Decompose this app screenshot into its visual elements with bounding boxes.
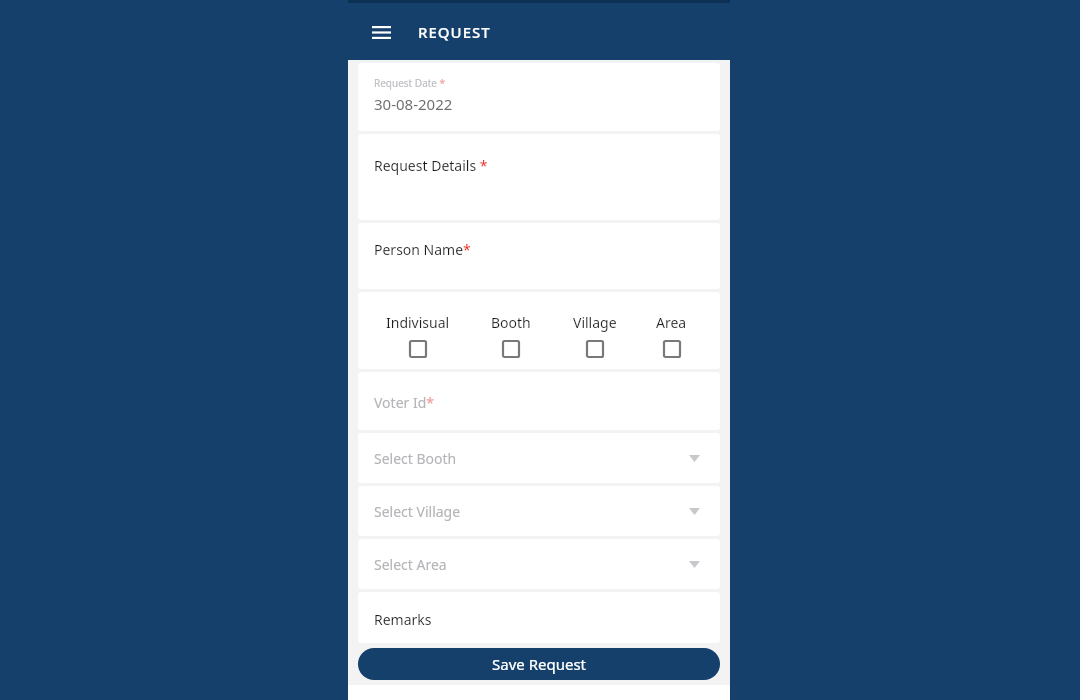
- staticText: Request Details *: [374, 156, 488, 175]
- staticText: Person Name*: [374, 240, 471, 259]
- button[interactable]: Save Request: [358, 648, 720, 680]
- staticText: Select Village: [374, 502, 689, 521]
- staticText: Select Booth: [374, 449, 689, 468]
- button[interactable]: Area: [637, 313, 706, 358]
- staticText: Request Date *: [374, 76, 446, 90]
- other: Expand Select Booth: [689, 455, 700, 462]
- staticText: Indivisual: [386, 313, 450, 332]
- button[interactable]: Open navigation menu: [366, 17, 396, 47]
- staticText: REQUEST: [418, 22, 491, 42]
- staticText: Booth: [491, 313, 531, 332]
- other: Expand Select Village: [689, 508, 700, 515]
- staticText: Save Request: [492, 654, 586, 674]
- button[interactable]: Indivisual: [366, 313, 469, 358]
- staticText: Voter Id*: [374, 393, 435, 412]
- staticText: Village: [573, 313, 617, 332]
- button[interactable]: Select Village: [358, 486, 720, 536]
- button[interactable]: Select Area: [358, 539, 720, 589]
- button[interactable]: Village: [553, 313, 637, 358]
- other: Expand Select Area: [689, 561, 700, 568]
- button[interactable]: Select Booth: [358, 433, 720, 483]
- staticText: Select Area: [374, 555, 689, 574]
- staticText: Area: [656, 313, 687, 332]
- staticText: Remarks: [374, 610, 432, 629]
- button[interactable]: Booth: [469, 313, 553, 358]
- staticText: 30-08-2022: [374, 94, 453, 114]
